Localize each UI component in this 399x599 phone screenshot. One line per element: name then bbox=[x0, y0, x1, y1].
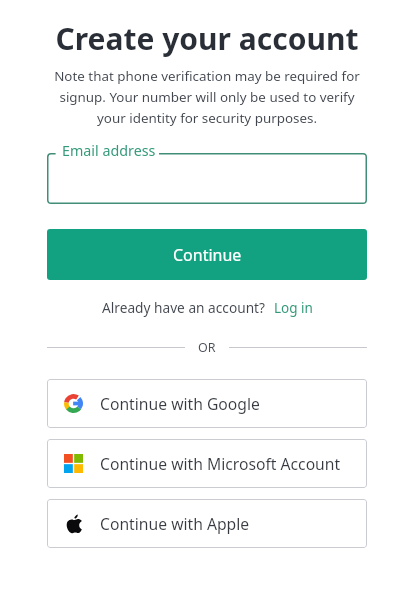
button[interactable]: Google bbox=[47, 379, 367, 428]
other: Google bbox=[64, 394, 83, 413]
staticText: Continue bbox=[173, 244, 242, 266]
staticText: Continue with Microsoft Account bbox=[100, 453, 341, 474]
staticText: Continue with Apple bbox=[100, 513, 250, 534]
staticText: Create your account bbox=[47, 18, 367, 59]
button[interactable]: Continue bbox=[47, 229, 367, 280]
staticText: Note that phone verification may be requ… bbox=[47, 67, 367, 127]
button[interactable]: Microsoft bbox=[47, 439, 367, 488]
button[interactable]: Apple bbox=[47, 499, 367, 548]
other: Apple bbox=[64, 514, 83, 533]
other: Microsoft bbox=[64, 454, 83, 473]
staticText: OR bbox=[198, 339, 216, 356]
button[interactable]: Email address bbox=[47, 147, 367, 204]
staticText: Continue with Google bbox=[100, 393, 260, 414]
staticText: Email address bbox=[62, 141, 156, 160]
staticText: Log in bbox=[274, 299, 313, 317]
button[interactable]: Log in bbox=[274, 299, 313, 317]
staticText: Already have an account? bbox=[102, 298, 265, 317]
